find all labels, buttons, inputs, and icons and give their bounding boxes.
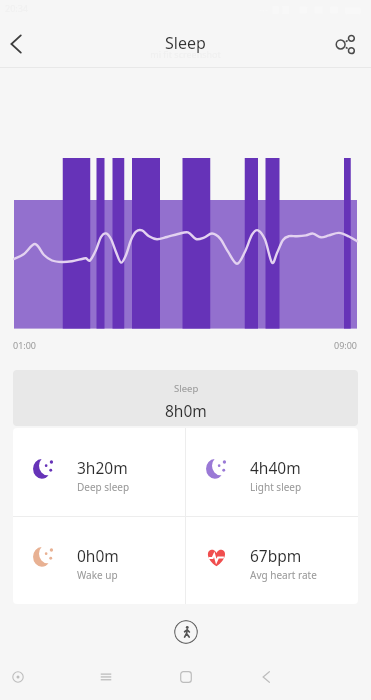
button[interactable]: 0h0m — [13, 517, 185, 604]
button[interactable]: Home — [164, 654, 208, 700]
button[interactable]: 3h20m — [13, 428, 185, 516]
button[interactable]: Steps — [174, 620, 198, 644]
button[interactable]: Assistant — [0, 654, 40, 700]
staticText: 8h0m — [165, 400, 207, 421]
staticText: 3h20m — [77, 457, 128, 478]
staticText: 4h40m — [250, 457, 301, 478]
staticText: Deep sleep — [77, 480, 130, 494]
button[interactable]: 4h40m — [186, 428, 358, 516]
staticText: Sleep — [174, 382, 199, 395]
staticText: 01:00 — [13, 339, 37, 351]
staticText: Wake up — [77, 568, 118, 582]
button[interactable]: Back — [0, 20, 32, 68]
staticText: Sleep — [165, 32, 206, 54]
staticText: Avg heart rate — [250, 568, 317, 582]
button[interactable]: Menu — [84, 654, 128, 700]
staticText: mi fit screenshot — [150, 48, 221, 60]
staticText: 0h0m — [77, 545, 119, 566]
button[interactable]: Share — [334, 20, 371, 68]
staticText: 09:00 — [334, 339, 358, 351]
button[interactable]: Sleep — [13, 370, 358, 426]
staticText: Light sleep — [250, 480, 302, 494]
button[interactable]: Back — [244, 654, 288, 700]
staticText: 67bpm — [250, 545, 302, 566]
button[interactable]: 67bpm — [186, 517, 358, 604]
